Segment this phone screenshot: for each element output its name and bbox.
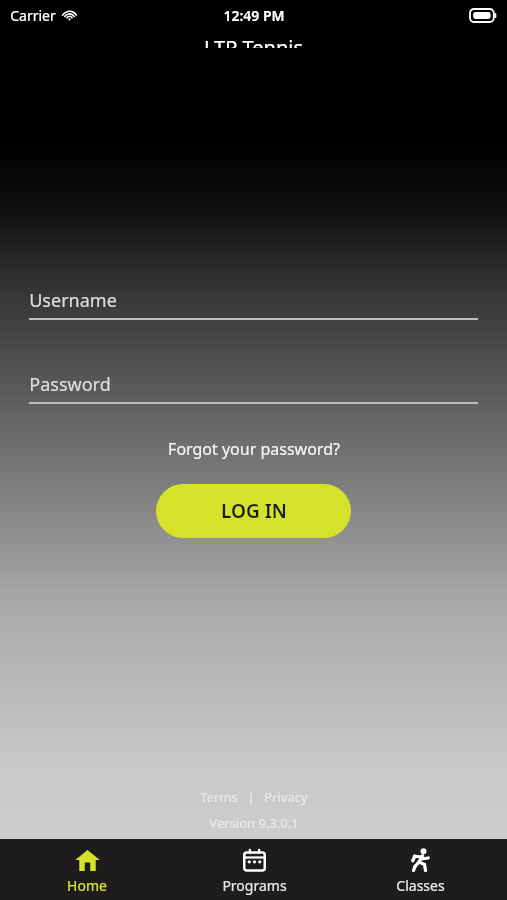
staticText: Programs [222,876,287,895]
button[interactable]: LOG IN [156,484,351,538]
button[interactable]: Home [7,839,167,900]
button[interactable]: Programs [174,839,334,900]
staticText: LTP Tennis [204,34,303,48]
staticText: Password [29,372,111,397]
staticText: Classes [396,876,445,895]
other: Home [75,848,100,873]
button[interactable]: Username [29,288,478,320]
other: Classes [408,848,433,873]
button[interactable]: Classes [340,839,500,900]
staticText: Version 9.3.0.1 [209,814,299,832]
button[interactable]: Terms [196,786,242,808]
staticText: Username [29,288,117,313]
button[interactable]: Password [29,372,478,404]
staticText: Privacy [264,788,308,806]
other: Programs [242,848,267,873]
staticText: Carrier [10,6,56,25]
staticText: LOG IN [221,498,287,524]
staticText: Forgot your password? [168,438,340,460]
staticText: 12:49 PM [223,6,285,25]
staticText: Home [67,876,107,895]
button[interactable]: Privacy [260,786,312,808]
staticText: | [247,788,255,806]
button[interactable]: Forgot your password? [162,434,346,464]
staticText: Terms [200,788,238,806]
